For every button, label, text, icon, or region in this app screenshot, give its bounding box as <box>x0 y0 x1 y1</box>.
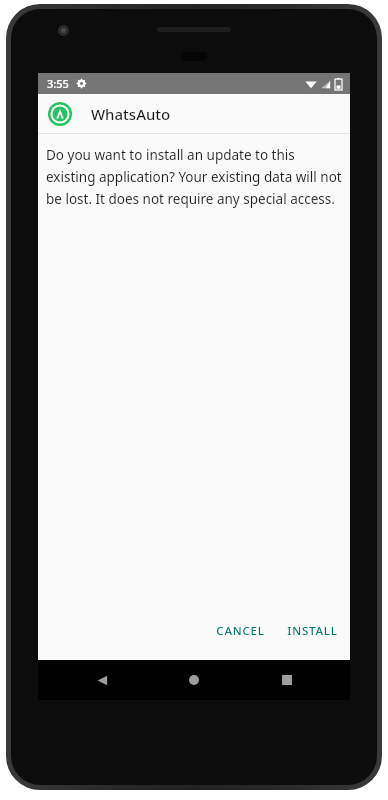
staticText: 3:55 <box>47 76 69 91</box>
button[interactable]: INSTALL <box>279 616 346 646</box>
staticText: INSTALL <box>287 623 338 639</box>
button[interactable]: CANCEL <box>208 616 273 646</box>
staticText: CANCEL <box>216 623 265 639</box>
staticText: WhatsAuto <box>91 104 171 124</box>
button[interactable]: Home <box>165 660 223 700</box>
button[interactable]: Back <box>73 660 131 700</box>
staticText: Do you want to install an update to this… <box>46 146 342 208</box>
button[interactable]: Recents <box>258 660 316 700</box>
